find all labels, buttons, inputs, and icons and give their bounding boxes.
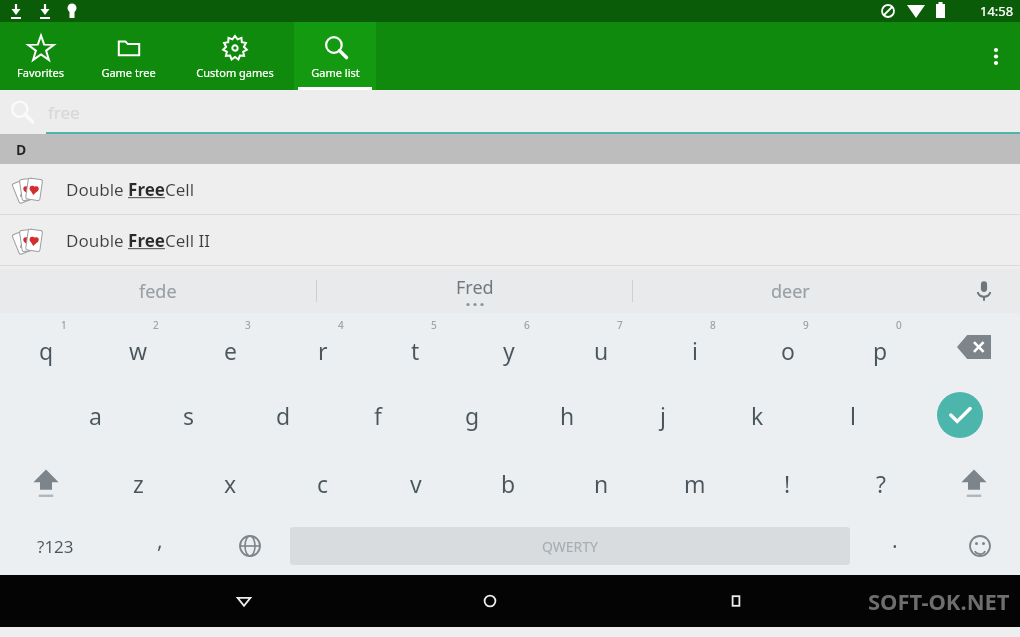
button[interactable]: q — [0, 313, 92, 381]
staticText: Game tree — [101, 65, 156, 80]
button[interactable]: r — [276, 313, 369, 381]
button[interactable]: j — [615, 381, 710, 449]
staticText: 3 — [245, 318, 251, 332]
button[interactable]: f — [330, 381, 425, 449]
staticText: w — [129, 335, 148, 366]
staticText: 9 — [803, 318, 809, 332]
button[interactable]: ?123 — [0, 517, 110, 575]
staticText: a — [89, 400, 102, 431]
button[interactable]: i — [648, 313, 741, 381]
staticText: 1 — [61, 318, 67, 332]
staticText: z — [133, 468, 144, 499]
staticText: SOFT-OK.NET — [868, 586, 1010, 616]
button[interactable]: l — [805, 381, 900, 449]
button[interactable]: deer — [633, 269, 948, 313]
staticText: Favorites — [17, 65, 64, 80]
button[interactable]: QWERTY — [290, 527, 850, 565]
button[interactable]: Recents — [713, 578, 759, 624]
staticText: r — [318, 335, 328, 366]
button[interactable]: Emoji — [940, 517, 1020, 575]
staticText: b — [501, 468, 516, 499]
staticText: c — [317, 468, 329, 499]
button[interactable]: Enter — [900, 381, 1020, 449]
button[interactable]: w — [92, 313, 184, 381]
staticText: free — [48, 101, 80, 124]
button[interactable]: free — [0, 90, 1020, 134]
staticText: h — [560, 400, 575, 431]
button[interactable]: ? — [834, 449, 927, 517]
staticText: 8 — [710, 318, 716, 332]
staticText: ? — [876, 468, 886, 499]
button[interactable]: p — [834, 313, 927, 381]
staticText: ?123 — [37, 535, 74, 558]
staticText: D — [16, 140, 27, 159]
staticText: f — [374, 400, 382, 431]
button[interactable]: Shift — [0, 449, 92, 517]
button[interactable]: x — [184, 449, 276, 517]
staticText: fede — [139, 279, 177, 304]
button[interactable]: Double FreeCell — [0, 164, 1020, 214]
button[interactable]: t — [369, 313, 462, 381]
button[interactable]: h — [520, 381, 615, 449]
staticText: QWERTY — [542, 537, 599, 556]
button[interactable]: , — [110, 517, 210, 575]
staticText: 7 — [617, 318, 623, 332]
button[interactable]: u — [555, 313, 648, 381]
button[interactable]: e — [184, 313, 276, 381]
staticText: i — [692, 335, 698, 366]
button[interactable]: c — [276, 449, 369, 517]
staticText: 6 — [524, 318, 530, 332]
staticText: . — [892, 526, 898, 555]
staticText: p — [873, 335, 888, 366]
staticText: 5 — [431, 318, 437, 332]
button[interactable]: Back — [221, 578, 267, 624]
button[interactable]: Favorites — [0, 22, 80, 90]
staticText: n — [594, 468, 609, 499]
button[interactable]: n — [555, 449, 648, 517]
button[interactable]: fede — [0, 269, 316, 313]
button[interactable]: Shift — [927, 449, 1020, 517]
button[interactable]: . — [850, 517, 940, 575]
button[interactable]: Custom games — [176, 22, 294, 90]
staticText: q — [39, 335, 54, 366]
button[interactable]: a — [48, 381, 142, 449]
staticText: y — [503, 335, 515, 366]
button[interactable]: g — [425, 381, 520, 449]
staticText: s — [183, 400, 195, 431]
staticText: 2 — [153, 318, 159, 332]
button[interactable]: d — [236, 381, 330, 449]
staticText: j — [660, 400, 666, 431]
staticText: g — [465, 400, 480, 431]
button[interactable]: ! — [741, 449, 834, 517]
button[interactable]: Fred — [317, 269, 632, 313]
button[interactable]: Game list — [294, 22, 376, 90]
button[interactable]: More options — [980, 40, 1012, 72]
button[interactable]: z — [92, 449, 184, 517]
staticText: v — [410, 468, 422, 499]
button[interactable]: Voice input — [948, 269, 1020, 313]
staticText: e — [224, 335, 237, 366]
button[interactable]: o — [741, 313, 834, 381]
staticText: m — [684, 468, 706, 499]
button[interactable]: s — [142, 381, 236, 449]
button[interactable]: Home — [467, 578, 513, 624]
staticText: deer — [771, 279, 810, 304]
staticText: 14:58 — [980, 2, 1014, 20]
button[interactable]: m — [648, 449, 741, 517]
button[interactable]: b — [462, 449, 555, 517]
staticText: x — [224, 468, 237, 499]
staticText: Custom games — [196, 65, 274, 80]
staticText: k — [751, 400, 764, 431]
button[interactable]: k — [710, 381, 805, 449]
staticText: d — [276, 400, 291, 431]
staticText: Game list — [311, 65, 360, 80]
staticText: l — [850, 400, 856, 431]
staticText: t — [411, 335, 420, 366]
button[interactable]: y — [462, 313, 555, 381]
button[interactable]: Game tree — [80, 22, 176, 90]
button[interactable]: v — [369, 449, 462, 517]
button[interactable]: Change language — [210, 517, 290, 575]
staticText: 4 — [338, 318, 344, 332]
button[interactable]: Backspace — [927, 313, 1020, 381]
button[interactable]: Double FreeCell II — [0, 215, 1020, 265]
